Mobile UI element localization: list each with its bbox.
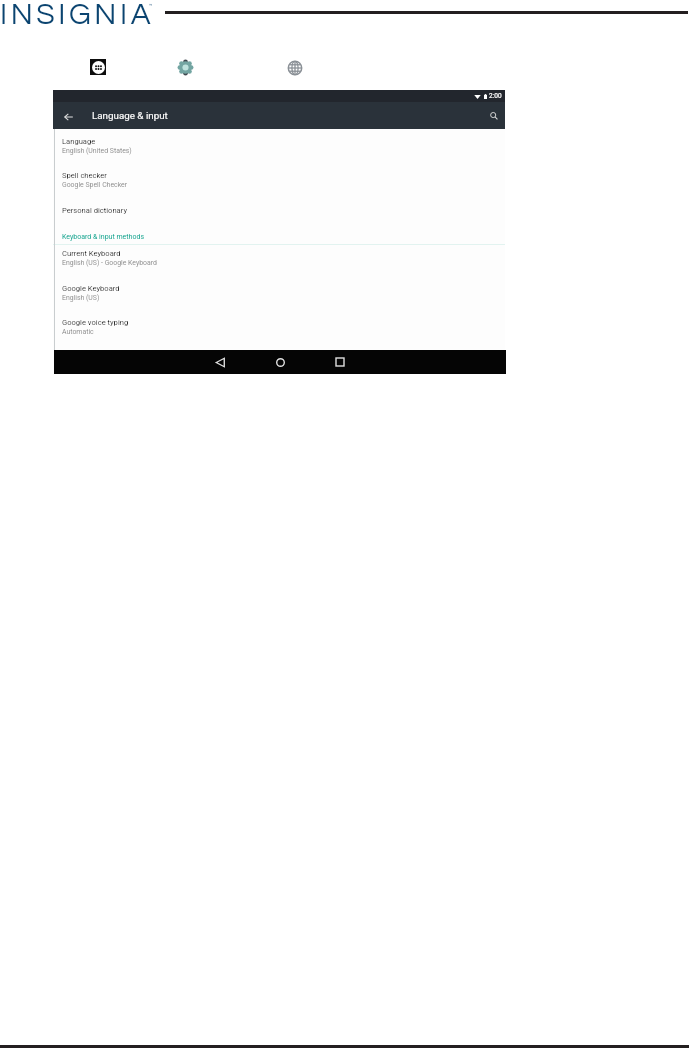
button[interactable]: All apps bbox=[90, 59, 106, 75]
button[interactable]: Home bbox=[250, 350, 310, 374]
button[interactable]: Search bbox=[486, 108, 501, 123]
staticText: Spell checker bbox=[62, 171, 107, 180]
button[interactable]: Google Keyboard bbox=[53, 281, 505, 316]
staticText: 2:00 bbox=[489, 92, 502, 100]
staticText: Keyboard & input methods bbox=[62, 233, 145, 241]
button[interactable]: Google voice typing bbox=[53, 315, 505, 350]
staticText: Language & input bbox=[92, 110, 168, 121]
staticText: English (US) - Google Keyboard bbox=[62, 259, 157, 267]
button[interactable]: Spell checker bbox=[53, 168, 505, 203]
button[interactable]: Back bbox=[61, 109, 76, 124]
staticText: INSIGNIA bbox=[0, 0, 155, 30]
staticText: Google Spell Checker bbox=[62, 181, 128, 189]
button[interactable]: Back bbox=[190, 350, 250, 374]
button[interactable]: Current Keyboard bbox=[53, 246, 505, 281]
button[interactable]: Language bbox=[53, 134, 505, 169]
staticText: Language bbox=[62, 137, 96, 146]
staticText: English (US) bbox=[62, 294, 100, 302]
button[interactable]: Recents bbox=[310, 350, 370, 374]
button[interactable]: Settings bbox=[177, 59, 193, 75]
staticText: Automatic bbox=[62, 328, 94, 336]
staticText: Personal dictionary bbox=[62, 206, 127, 215]
staticText: Current Keyboard bbox=[62, 249, 121, 258]
staticText: English (United States) bbox=[62, 147, 132, 155]
staticText: ™ bbox=[149, 2, 153, 9]
staticText: Google Keyboard bbox=[62, 284, 120, 293]
staticText: Google voice typing bbox=[62, 318, 129, 327]
button[interactable]: Personal dictionary bbox=[53, 203, 505, 227]
button[interactable]: Language bbox=[287, 60, 303, 76]
